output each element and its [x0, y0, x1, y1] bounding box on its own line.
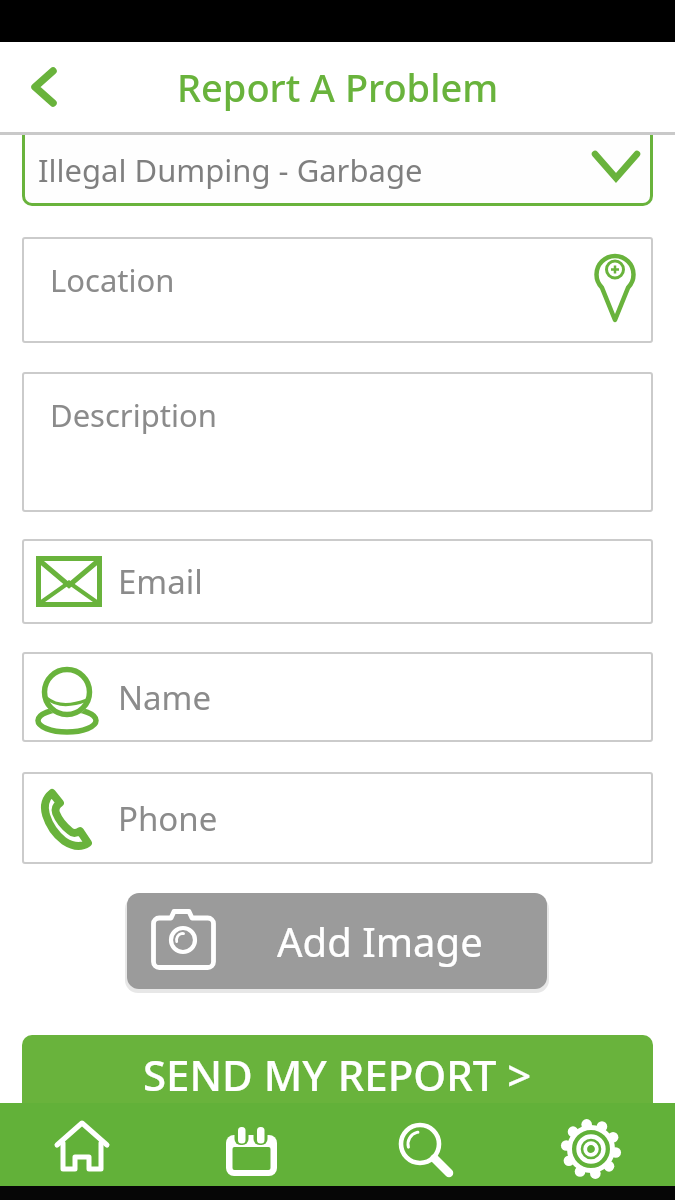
- staticText: Name: [118, 675, 212, 720]
- staticText: Add Image: [277, 914, 483, 968]
- staticText: Phone: [118, 796, 218, 841]
- staticText: SEND MY REPORT >: [143, 1046, 532, 1103]
- button[interactable]: Illegal Dumping - Garbage: [22, 112, 653, 206]
- button[interactable]: [168, 1103, 337, 1186]
- button[interactable]: [0, 1103, 168, 1186]
- button[interactable]: [337, 1103, 506, 1186]
- button[interactable]: [31, 67, 57, 107]
- staticText: Report A Problem: [177, 61, 499, 113]
- button[interactable]: [506, 1103, 675, 1186]
- button[interactable]: Location: [22, 237, 653, 343]
- button[interactable]: Phone: [22, 772, 653, 864]
- staticText: Location: [50, 259, 175, 301]
- staticText: Description: [50, 394, 217, 436]
- button[interactable]: Name: [22, 652, 653, 742]
- button[interactable]: Add Image: [127, 893, 547, 989]
- button[interactable]: Description: [22, 372, 653, 512]
- staticText: Email: [118, 559, 203, 604]
- staticText: Illegal Dumping - Garbage: [38, 149, 423, 191]
- button[interactable]: Email: [22, 539, 653, 624]
- button[interactable]: SEND MY REPORT >: [22, 1035, 653, 1115]
